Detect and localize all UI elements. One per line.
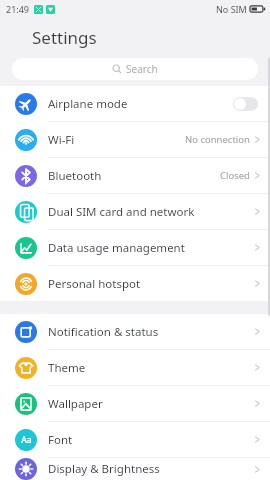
- button[interactable]: Display & Brightness: [0, 458, 270, 480]
- button[interactable]: Airplane mode toggle: [233, 97, 258, 111]
- button[interactable]: Notification & status: [0, 314, 270, 349]
- button[interactable]: Search: [12, 58, 258, 80]
- button[interactable]: Aa: [0, 422, 270, 457]
- staticText: Notification & status: [48, 324, 254, 340]
- button[interactable]: Personal hotspot: [0, 266, 270, 301]
- button[interactable]: Airplane mode: [0, 86, 270, 121]
- staticText: Theme: [48, 360, 254, 376]
- staticText: Wallpaper: [48, 396, 254, 412]
- staticText: 21:49: [6, 3, 30, 15]
- staticText: Aa: [21, 434, 32, 446]
- staticText: Data usage management: [48, 240, 254, 256]
- staticText: No SIM: [216, 3, 247, 15]
- button[interactable]: Dual SIM card and network: [0, 194, 270, 229]
- staticText: Settings: [32, 26, 97, 49]
- staticText: No connection: [185, 133, 250, 146]
- staticText: Airplane mode: [48, 96, 233, 112]
- staticText: Wi-Fi: [48, 132, 185, 148]
- button[interactable]: Theme: [0, 350, 270, 385]
- button[interactable]: Bluetooth: [0, 158, 270, 193]
- button[interactable]: Wallpaper: [0, 386, 270, 421]
- staticText: Font: [48, 432, 254, 448]
- staticText: Personal hotspot: [48, 276, 254, 292]
- staticText: Display & Brightness: [48, 461, 254, 477]
- staticText: Bluetooth: [48, 168, 220, 184]
- button[interactable]: Data usage management: [0, 230, 270, 265]
- staticText: Closed: [220, 169, 250, 182]
- staticText: Dual SIM card and network: [48, 204, 254, 220]
- button[interactable]: Wi-Fi: [0, 122, 270, 157]
- staticText: Search: [126, 62, 158, 76]
